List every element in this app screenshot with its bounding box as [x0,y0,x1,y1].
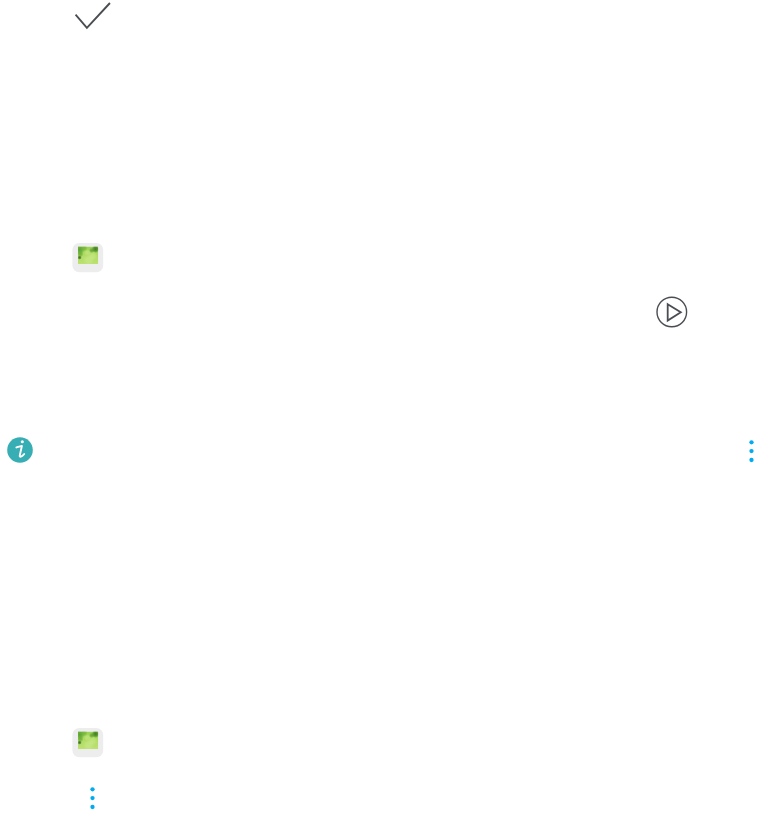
button[interactable]: More options [744,438,758,464]
button[interactable]: Done [72,0,112,34]
button[interactable]: Image [72,243,104,274]
button[interactable]: Play [656,296,688,328]
button[interactable]: More options [85,785,99,811]
button[interactable]: Info [7,437,34,464]
button[interactable]: Image [72,728,104,759]
